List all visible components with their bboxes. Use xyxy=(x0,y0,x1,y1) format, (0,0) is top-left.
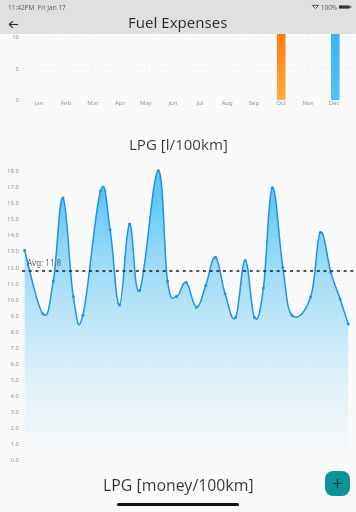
staticText: 0.0 xyxy=(1,456,19,464)
staticText: Nov xyxy=(297,99,319,107)
staticText: Mar xyxy=(82,99,104,107)
staticText: 12.0 xyxy=(1,264,19,272)
staticText: LPG [l/100km] xyxy=(129,134,228,154)
staticText: Oct xyxy=(270,99,292,107)
staticText: 11:42PM Fri Jan 17 xyxy=(8,3,66,12)
button[interactable]: Back xyxy=(4,15,22,33)
staticText: Apr xyxy=(109,99,131,107)
staticText: 1.0 xyxy=(1,440,19,448)
staticText: 11.0 xyxy=(1,280,19,288)
staticText: 6.0 xyxy=(1,360,19,368)
staticText: May xyxy=(135,99,157,107)
staticText: 10 xyxy=(2,33,19,41)
staticText: 0 xyxy=(2,96,19,104)
staticText: 3.0 xyxy=(1,408,19,416)
staticText: Fuel Expenses xyxy=(128,12,228,32)
staticText: 10.0 xyxy=(1,296,19,304)
staticText: 5 xyxy=(2,65,19,73)
staticText: Aug xyxy=(216,99,238,107)
staticText: 2.0 xyxy=(1,424,19,432)
staticText: Jul xyxy=(189,99,211,107)
staticText: 13.0 xyxy=(1,247,19,255)
staticText: Feb xyxy=(55,99,77,107)
staticText: 5.0 xyxy=(1,376,19,384)
staticText: Jun xyxy=(162,99,184,107)
staticText: Jan xyxy=(28,99,50,107)
staticText: 18.0 xyxy=(1,167,19,175)
staticText: LPG [money/100km] xyxy=(103,474,254,496)
staticText: 7.0 xyxy=(1,344,19,352)
staticText: 9.0 xyxy=(1,312,19,320)
staticText: 15.0 xyxy=(1,215,19,223)
staticText: 17.0 xyxy=(1,183,19,191)
staticText: 8.0 xyxy=(1,328,19,336)
button[interactable]: Add entry xyxy=(325,471,350,496)
staticText: 4.0 xyxy=(1,392,19,400)
staticText: 100% xyxy=(319,3,339,12)
staticText: 16.0 xyxy=(1,199,19,207)
staticText: Sep xyxy=(243,99,265,107)
staticText: Avg: 11.8 xyxy=(27,257,62,268)
staticText: Dec xyxy=(323,99,345,107)
staticText: 14.0 xyxy=(1,231,19,239)
